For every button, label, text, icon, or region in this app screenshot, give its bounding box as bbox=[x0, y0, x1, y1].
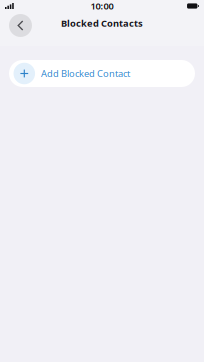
button[interactable]: Back bbox=[9, 14, 32, 37]
staticText: Add Blocked Contact bbox=[41, 67, 130, 80]
staticText: 10:00 bbox=[90, 0, 113, 12]
button[interactable]: Add Blocked Contact bbox=[9, 60, 195, 87]
staticText: Blocked Contacts bbox=[61, 17, 143, 29]
